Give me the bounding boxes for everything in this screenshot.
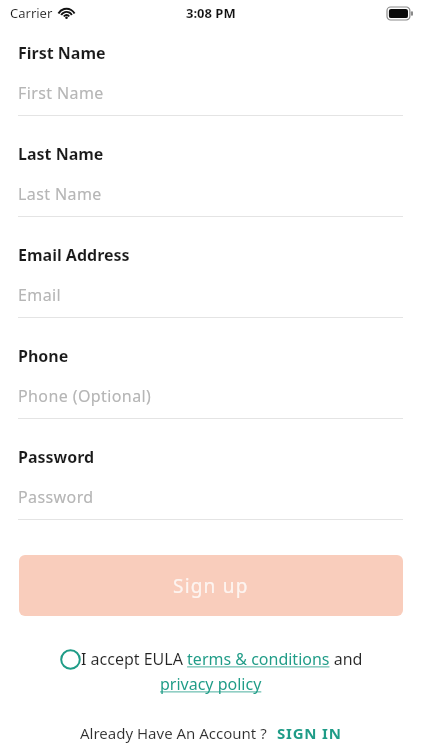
- staticText: Last Name: [18, 183, 102, 205]
- button[interactable]: Sign up: [19, 555, 403, 616]
- staticText: privacy policy: [160, 673, 262, 695]
- button[interactable]: privacy policy: [160, 673, 262, 695]
- staticText: 3:08 PM: [186, 4, 236, 22]
- button[interactable]: Last Name: [0, 183, 422, 217]
- button[interactable]: Accept EULA checkbox: [60, 648, 363, 670]
- staticText: SIGN IN: [277, 723, 342, 743]
- staticText: Email Address: [18, 244, 130, 266]
- staticText: Email: [18, 284, 62, 306]
- staticText: Phone: [18, 345, 69, 367]
- staticText: Phone (Optional): [18, 385, 152, 407]
- staticText: Last Name: [18, 143, 104, 165]
- other: Accept EULA checkbox: [60, 649, 81, 670]
- staticText: First Name: [18, 82, 104, 104]
- staticText: Sign up: [173, 573, 249, 599]
- button[interactable]: First Name: [0, 82, 422, 116]
- button[interactable]: Phone (Optional): [0, 385, 422, 419]
- staticText: I accept EULA terms & conditions and: [81, 648, 363, 670]
- button[interactable]: Email: [0, 284, 422, 318]
- staticText: Already Have An Account ?: [80, 723, 267, 743]
- staticText: Password: [18, 486, 94, 508]
- button[interactable]: Password: [0, 486, 422, 520]
- button[interactable]: SIGN IN: [277, 723, 342, 743]
- staticText: Carrier: [10, 4, 53, 22]
- staticText: Password: [18, 446, 95, 468]
- staticText: First Name: [18, 42, 106, 64]
